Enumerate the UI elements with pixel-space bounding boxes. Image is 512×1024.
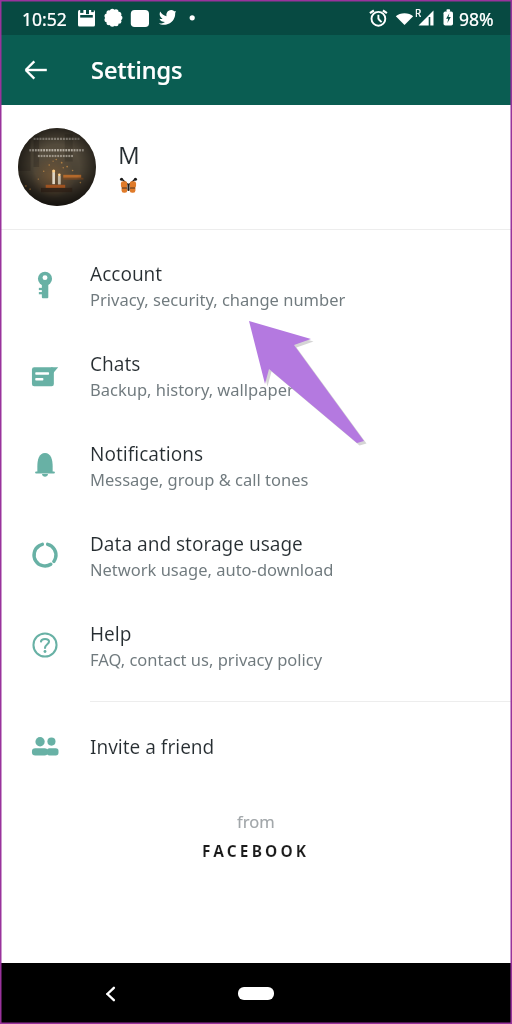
button[interactable]: Account bbox=[0, 240, 512, 330]
staticText: FAQ, contact us, privacy policy bbox=[90, 648, 323, 670]
staticText: 98% bbox=[459, 7, 494, 31]
staticText: Privacy, security, change number bbox=[90, 288, 346, 310]
staticText: Account bbox=[90, 261, 163, 287]
staticText: R bbox=[415, 6, 422, 20]
staticText: Chats bbox=[90, 351, 141, 377]
staticText: FACEBOOK bbox=[202, 840, 310, 861]
button[interactable]: Back bbox=[12, 46, 60, 94]
staticText: from bbox=[237, 810, 275, 832]
button[interactable]: Chats bbox=[0, 330, 512, 420]
staticText: Notifications bbox=[90, 441, 204, 467]
staticText: M bbox=[118, 138, 140, 171]
button[interactable]: M bbox=[0, 105, 512, 229]
button[interactable]: Invite a friend bbox=[0, 702, 512, 792]
button[interactable]: Home bbox=[238, 987, 274, 1000]
button[interactable]: Help bbox=[0, 600, 512, 690]
staticText: Network usage, auto-download bbox=[90, 558, 334, 580]
button[interactable]: Notifications bbox=[0, 420, 512, 510]
button[interactable]: Data and storage usage bbox=[0, 510, 512, 600]
staticText: Message, group & call tones bbox=[90, 468, 309, 490]
staticText: Backup, history, wallpaper bbox=[90, 378, 294, 400]
staticText: Settings bbox=[91, 54, 183, 86]
staticText: 10:52 bbox=[22, 7, 67, 31]
button[interactable]: Back bbox=[93, 976, 129, 1012]
staticText: Data and storage usage bbox=[90, 531, 303, 557]
staticText: Help bbox=[90, 621, 132, 647]
staticText: Invite a friend bbox=[90, 734, 215, 760]
